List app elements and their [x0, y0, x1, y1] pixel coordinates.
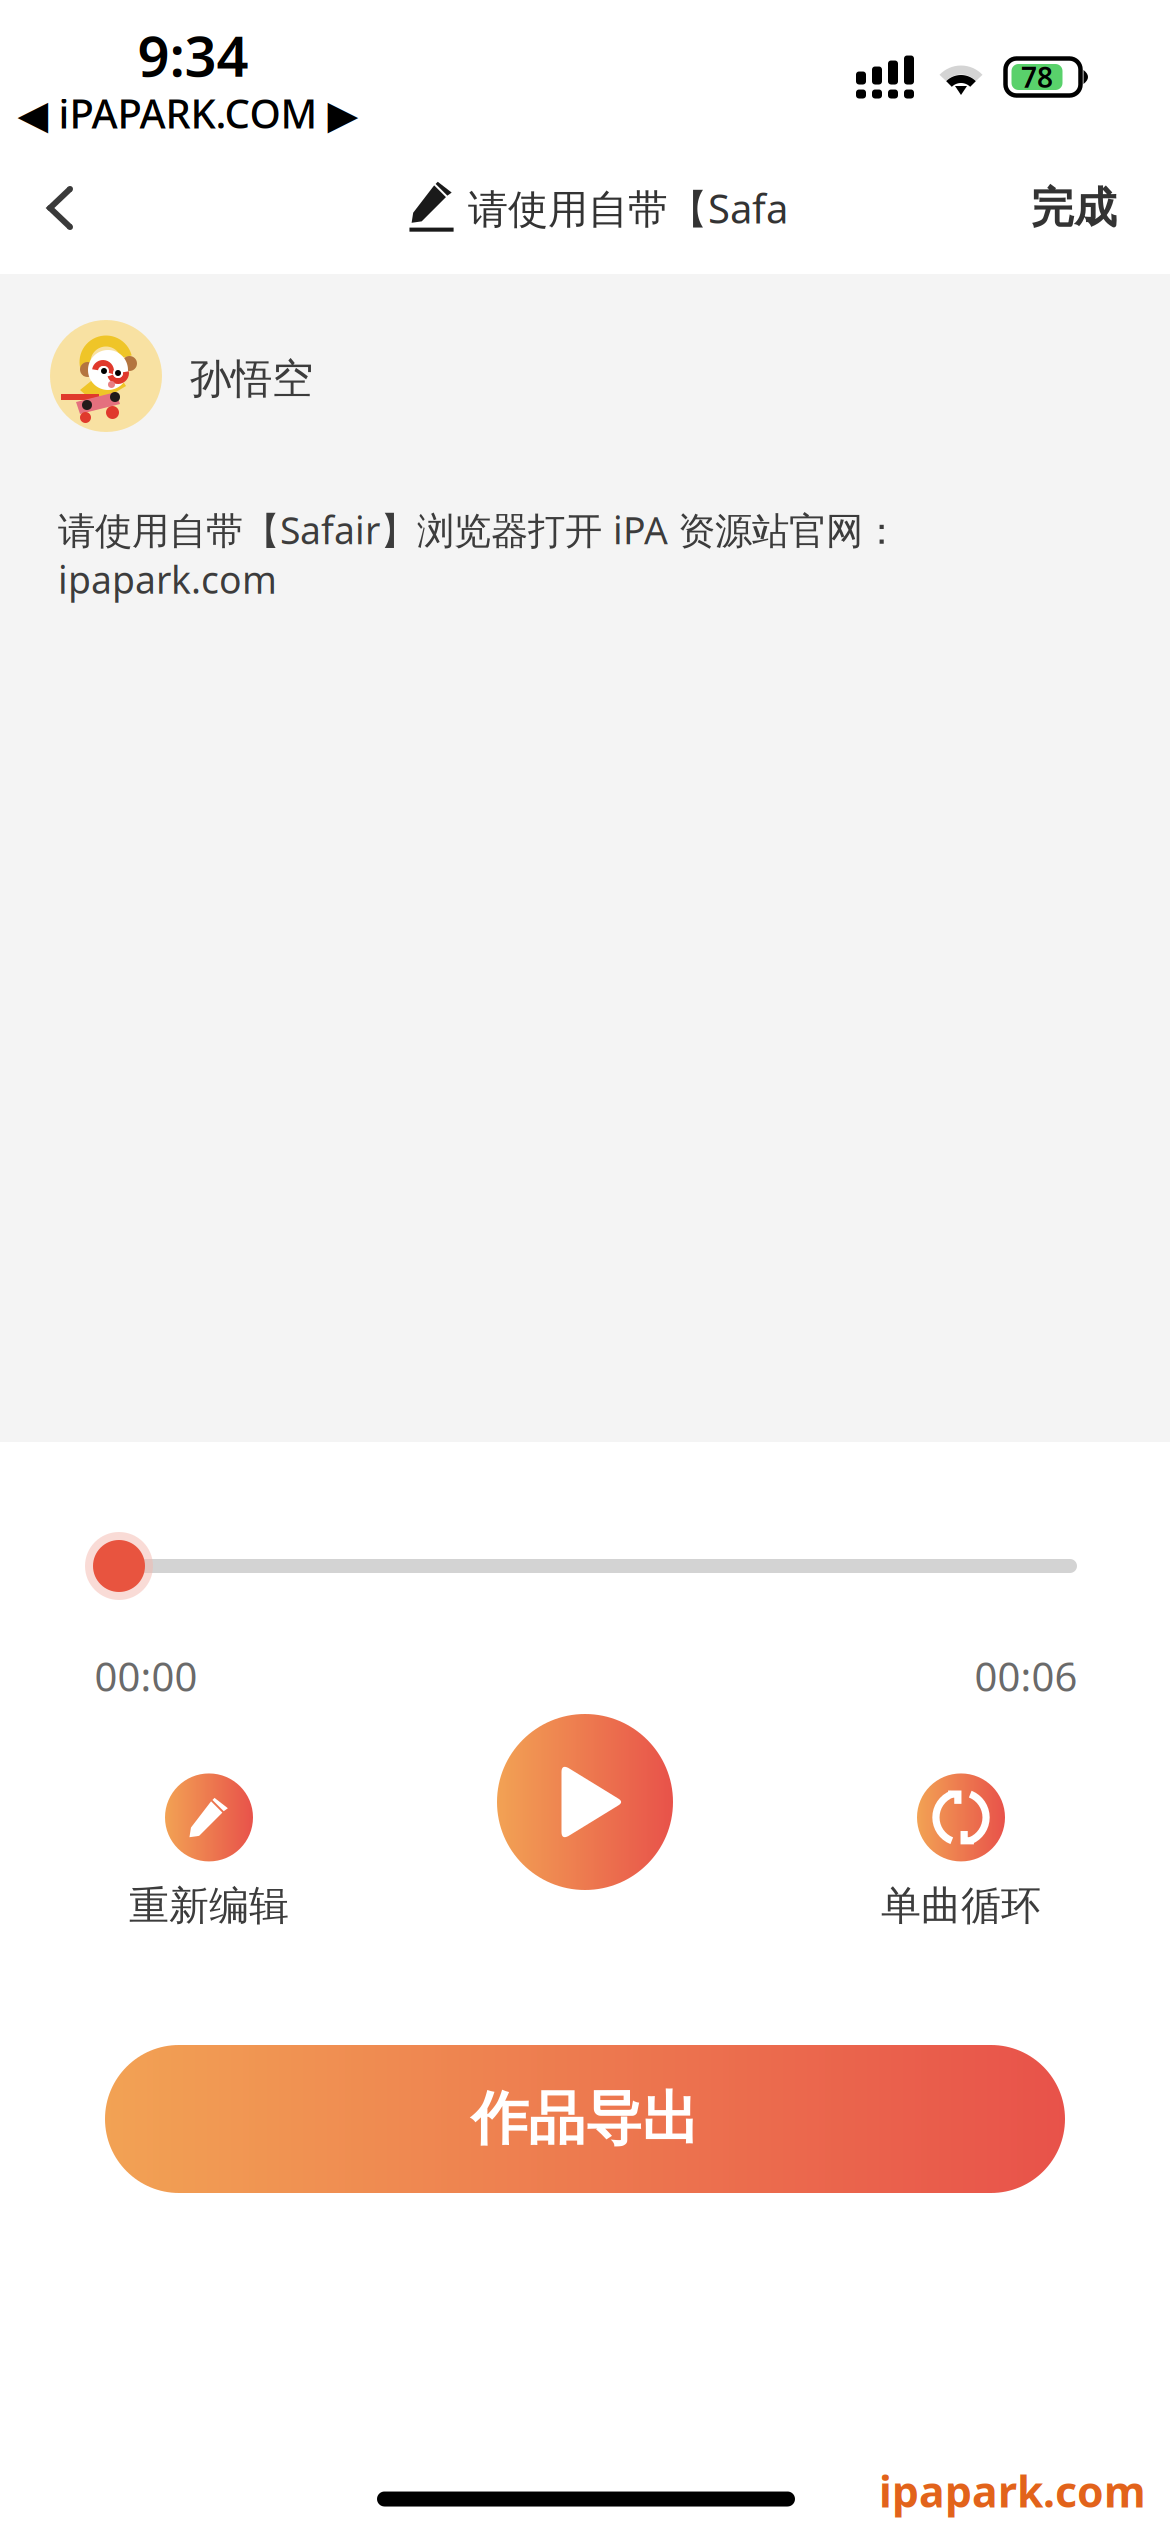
staticText: ◀ iPAPARK.COM ▶	[17, 86, 358, 139]
staticText: 9:34	[137, 18, 248, 92]
button[interactable]: Back	[4, 150, 116, 266]
button[interactable]: 单曲循环	[821, 1752, 1101, 1952]
staticText: 00:06	[974, 1649, 1077, 1702]
staticText: 请使用自带【Safair】浏览器打开 iPA 资源站官网： ipapark.co…	[58, 505, 900, 604]
button[interactable]: 重新编辑	[69, 1752, 349, 1952]
staticText: ipapark.com	[879, 2463, 1146, 2519]
staticText: 重新编辑	[129, 1881, 289, 1930]
staticText: 孙悟空	[190, 354, 313, 404]
staticText: 完成	[1031, 182, 1117, 234]
staticText: 78	[1021, 58, 1053, 96]
button[interactable]: 完成	[994, 150, 1154, 266]
staticText: 00:00	[94, 1649, 197, 1702]
staticText: 请使用自带【Safa	[468, 181, 788, 234]
button[interactable]: 作品导出	[105, 2045, 1065, 2193]
staticText: 作品导出	[471, 2084, 699, 2154]
staticText: 单曲循环	[881, 1881, 1041, 1930]
button[interactable]: Play	[497, 1714, 673, 1890]
